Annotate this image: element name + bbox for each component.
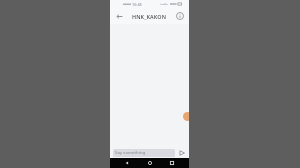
- button[interactable]: Back: [122, 158, 132, 168]
- button[interactable]: HNK_KAKON: [132, 13, 167, 20]
- button[interactable]: Back: [113, 10, 125, 22]
- button[interactable]: Recent apps: [167, 158, 177, 168]
- button[interactable]: Home: [145, 158, 155, 168]
- button[interactable]: Say something: [113, 149, 175, 157]
- button[interactable]: Send: [177, 148, 186, 157]
- button[interactable]: Attachment: [183, 112, 192, 121]
- button[interactable]: Info: [174, 10, 186, 22]
- staticText: محمد: [160, 2, 169, 6]
- staticText: Say something: [115, 150, 146, 156]
- staticText: 10:48: [132, 2, 142, 7]
- staticText: HNK_KAKON: [132, 13, 167, 20]
